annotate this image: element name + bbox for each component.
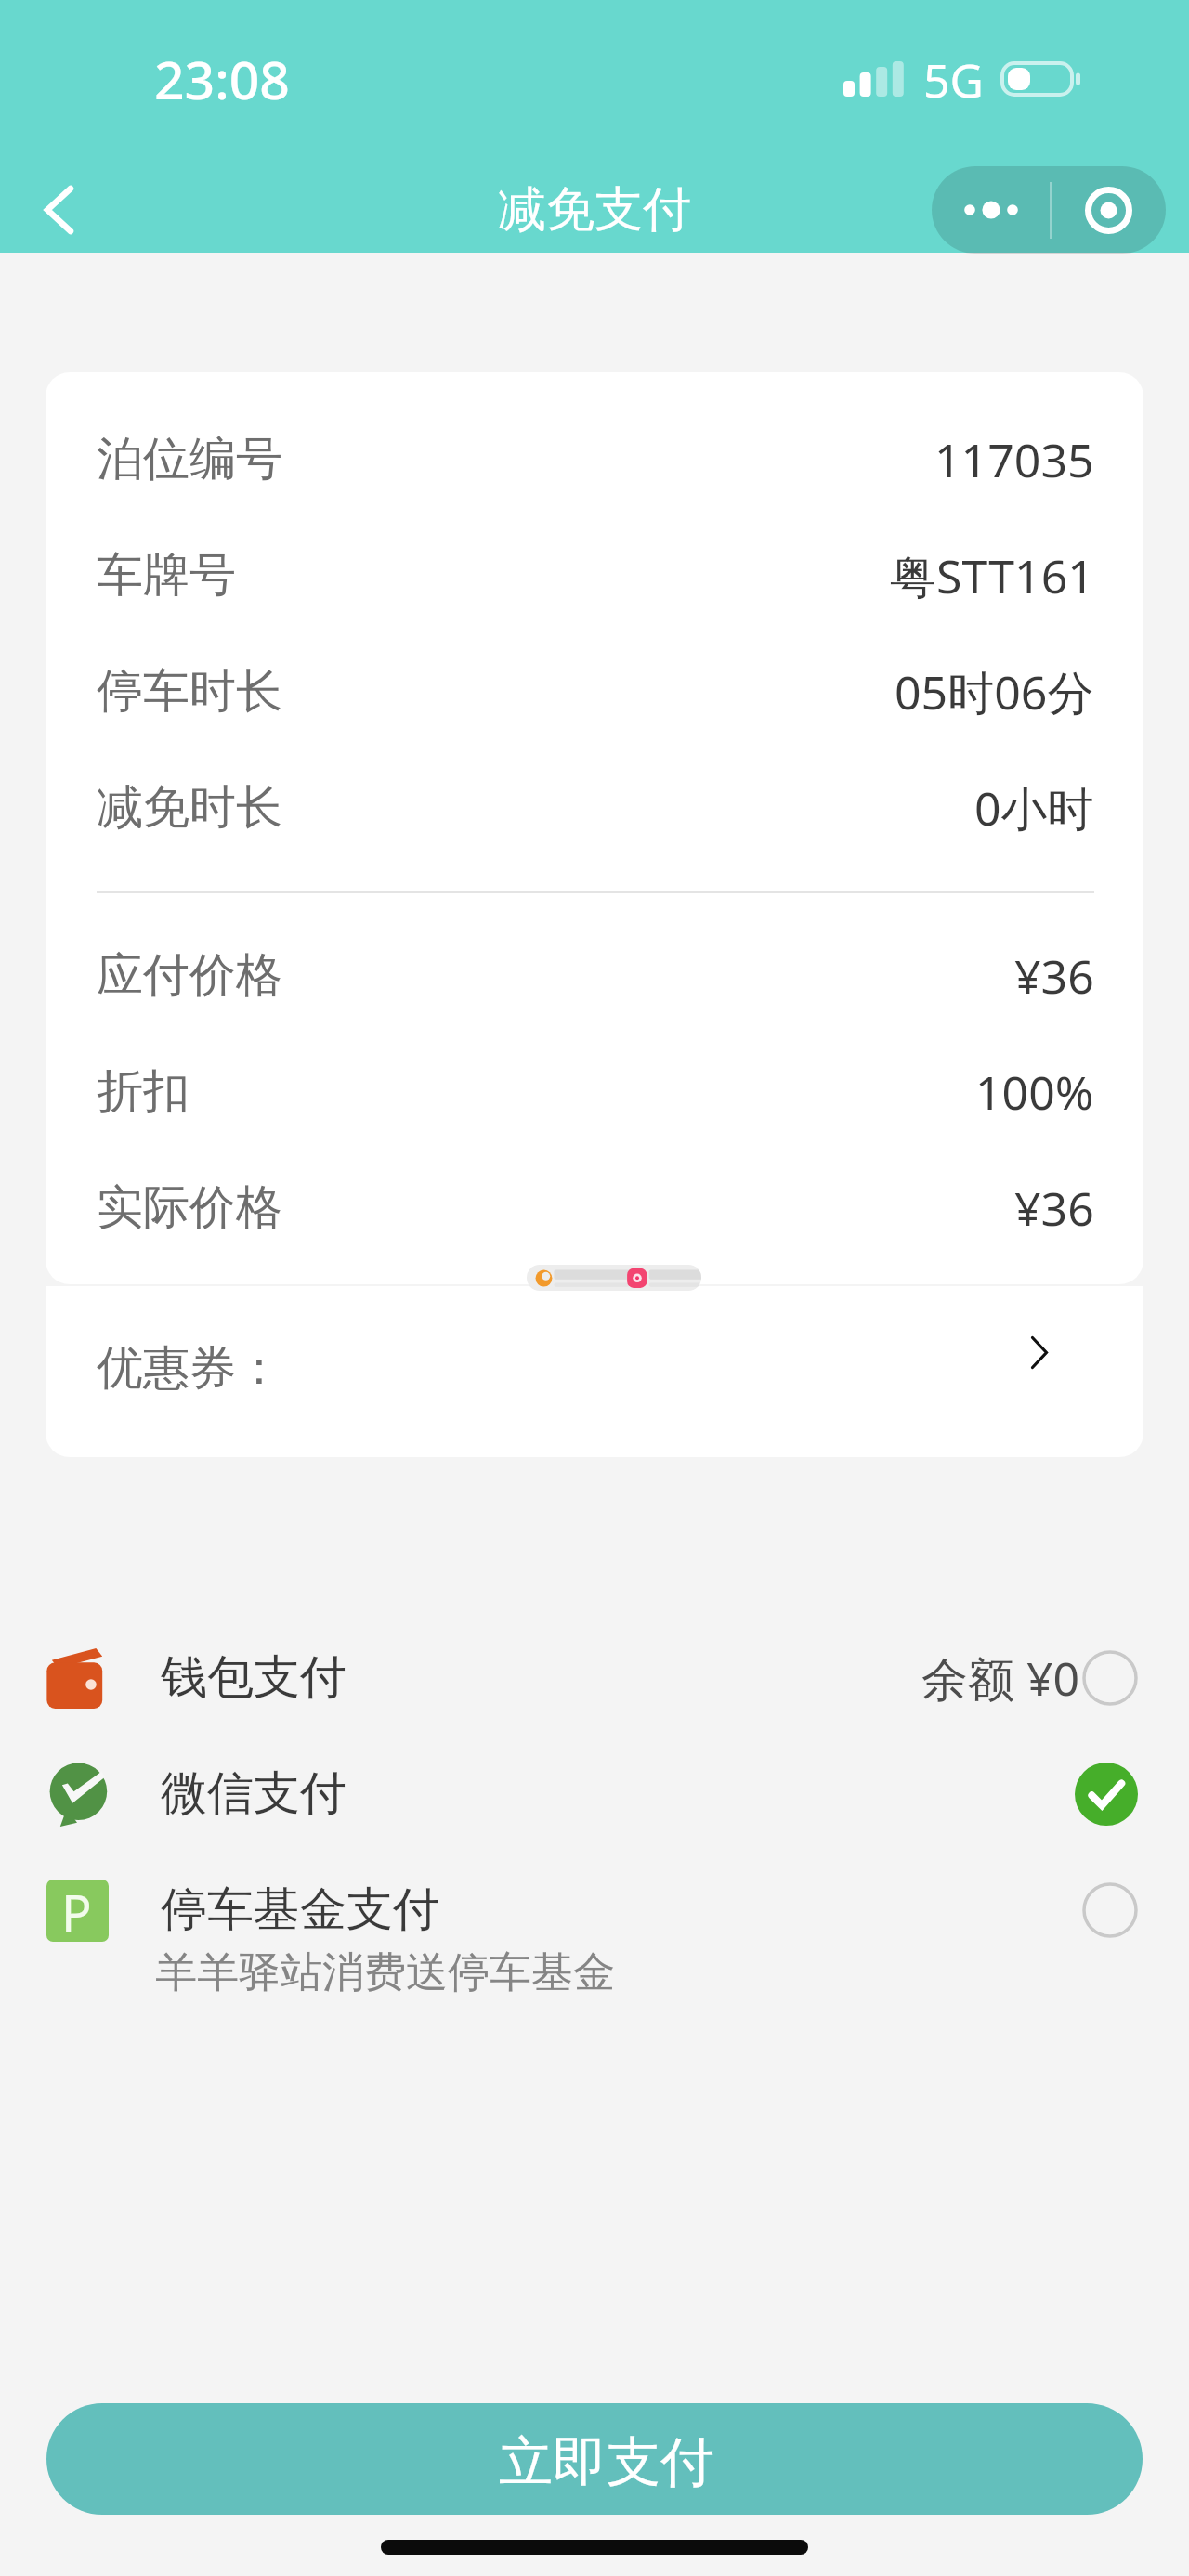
button[interactable]: 钱包支付 — [0, 1620, 1189, 1736]
button[interactable]: More options and close — [932, 166, 1166, 254]
button[interactable]: P — [0, 1852, 1189, 1968]
staticText: 钱包支付 — [161, 1648, 346, 1707]
staticText: 0小时 — [974, 776, 1094, 839]
staticText: 折扣 — [97, 1062, 189, 1121]
staticText: 停车时长 — [97, 662, 282, 721]
staticText: ¥36 — [1014, 944, 1094, 1008]
button[interactable]: 立即支付 — [46, 2403, 1143, 2515]
staticText: 05时06分 — [895, 660, 1094, 723]
staticText: 减免支付 — [498, 179, 691, 241]
staticText: 停车基金支付 — [161, 1880, 439, 1939]
staticText: 泊位编号 — [97, 430, 282, 488]
staticText: 23:08 — [154, 43, 290, 115]
staticText: 羊羊驿站消费送停车基金 — [155, 1946, 615, 1999]
staticText: 立即支付 — [499, 2428, 714, 2496]
staticText: 粤STT161 — [890, 544, 1094, 607]
button[interactable]: 微信支付 — [0, 1736, 1189, 1852]
staticText: 余额 ¥0 — [921, 1646, 1080, 1710]
staticText: 实际价格 — [97, 1178, 282, 1237]
staticText: 减免时长 — [97, 778, 282, 837]
button[interactable]: 优惠券： — [46, 1286, 1143, 1457]
staticText: 微信支付 — [161, 1764, 346, 1823]
staticText: 5G — [923, 48, 984, 111]
staticText: 117035 — [934, 428, 1094, 491]
staticText: 优惠券： — [97, 1339, 282, 1398]
staticText: ¥36 — [1014, 1177, 1094, 1240]
button[interactable]: Back — [13, 154, 106, 247]
staticText: 车牌号 — [97, 546, 236, 605]
staticText: P — [61, 1880, 92, 1940]
staticText: 100% — [975, 1060, 1094, 1124]
staticText: 应付价格 — [97, 946, 282, 1005]
